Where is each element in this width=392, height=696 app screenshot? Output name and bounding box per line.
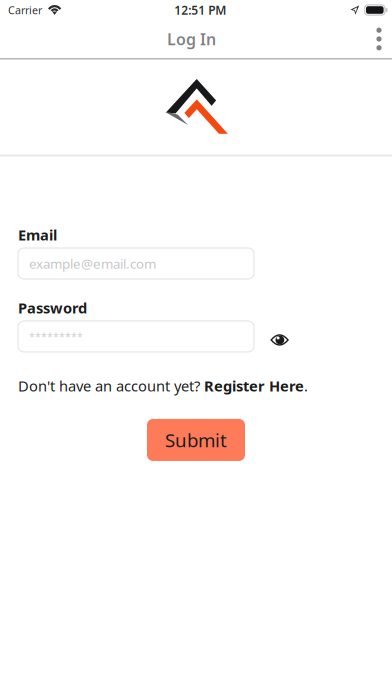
staticText: Register Here <box>204 376 304 395</box>
staticText: Submit <box>165 427 227 452</box>
staticText: Password <box>18 298 87 317</box>
button[interactable]: Show password <box>254 321 302 352</box>
staticText: . <box>304 376 308 395</box>
staticText: example@email.com <box>29 255 156 272</box>
button[interactable]: Register Here <box>204 376 304 395</box>
staticText: 12:51 PM <box>174 2 226 18</box>
staticText: Email <box>18 225 57 244</box>
button[interactable]: Submit <box>147 419 245 461</box>
staticText: Log In <box>167 28 216 50</box>
staticText: Don't have an account yet? <box>18 376 204 395</box>
button[interactable]: More options <box>366 20 392 58</box>
staticText: ********* <box>29 329 83 344</box>
staticText: Carrier <box>8 3 42 17</box>
